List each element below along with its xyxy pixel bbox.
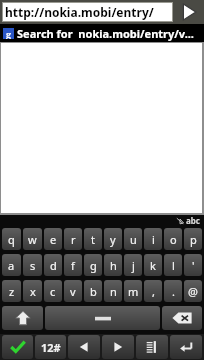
button[interactable]: Move right [102,335,134,359]
button[interactable]: t [84,228,102,250]
button[interactable]: . [164,280,182,302]
button[interactable]: v [64,280,82,302]
button[interactable]: b [84,280,102,302]
staticText: q [8,232,15,247]
staticText: g [6,28,12,39]
staticText: . [172,284,175,299]
staticText: g [90,258,97,273]
button[interactable]: Accept [2,335,33,359]
button[interactable]: o [164,228,182,250]
staticText: Search for nokia.mobi/entry/v... [17,26,194,41]
staticText: i [152,232,155,247]
button[interactable]: k [144,254,162,276]
button[interactable]: http://nokia.mobi/entry/var [3,3,172,21]
staticText: u [130,232,137,247]
staticText: v [70,284,76,299]
staticText: f [71,258,75,273]
staticText: m [128,284,139,299]
button[interactable]: y [104,228,122,250]
button[interactable]: Enter [170,335,202,359]
staticText: e [50,232,57,247]
staticText: y [110,232,116,247]
button[interactable]: w [23,228,42,250]
staticText: z [9,284,15,299]
staticText: http://nokia.mobi/entry/var [5,4,172,20]
staticText: n [110,284,117,299]
staticText: a [8,258,15,273]
staticText: s [30,258,36,273]
button[interactable]: r [64,228,82,250]
button[interactable]: Go [176,2,202,22]
button[interactable]: j [124,254,142,276]
staticText: t [91,232,95,247]
button[interactable]: g [0,24,204,42]
button[interactable]: l [164,254,182,276]
button[interactable]: Backspace [162,306,202,330]
staticText: ' [192,258,195,273]
button[interactable]: , [144,280,162,302]
button[interactable]: ' [184,254,202,276]
staticText: w [28,232,37,247]
button[interactable]: p [184,228,202,250]
button[interactable]: h [104,254,122,276]
button[interactable]: e [44,228,62,250]
button[interactable]: z [2,280,21,302]
button[interactable]: Shift [2,306,43,330]
button[interactable]: m [124,280,142,302]
staticText: l [172,258,175,273]
staticText: 12# [41,340,61,355]
staticText: p [190,232,197,247]
button[interactable]: Options menu [136,335,168,359]
button[interactable]: Space [45,306,160,330]
button[interactable]: q [2,228,21,250]
button[interactable]: n [104,280,122,302]
button[interactable]: u [124,228,142,250]
staticText: abc [186,215,200,226]
button[interactable]: i [144,228,162,250]
staticText: o [170,232,177,247]
staticText: r [71,232,76,247]
staticText: d [50,258,57,273]
button[interactable]: c [44,280,62,302]
button[interactable]: @ [184,280,202,302]
staticText: k [150,258,156,273]
button[interactable]: Numbers and symbols [35,335,66,359]
staticText: , [152,284,155,299]
button[interactable]: g [84,254,102,276]
staticText: b [90,284,97,299]
staticText: x [30,284,36,299]
button[interactable]: Move left [68,335,100,359]
staticText: j [132,258,135,273]
button[interactable]: d [44,254,62,276]
button[interactable]: a [2,254,21,276]
staticText: h [110,258,117,273]
button[interactable]: s [23,254,42,276]
staticText: @ [188,284,198,299]
button[interactable]: x [23,280,42,302]
staticText: c [50,284,56,299]
button[interactable]: f [64,254,82,276]
